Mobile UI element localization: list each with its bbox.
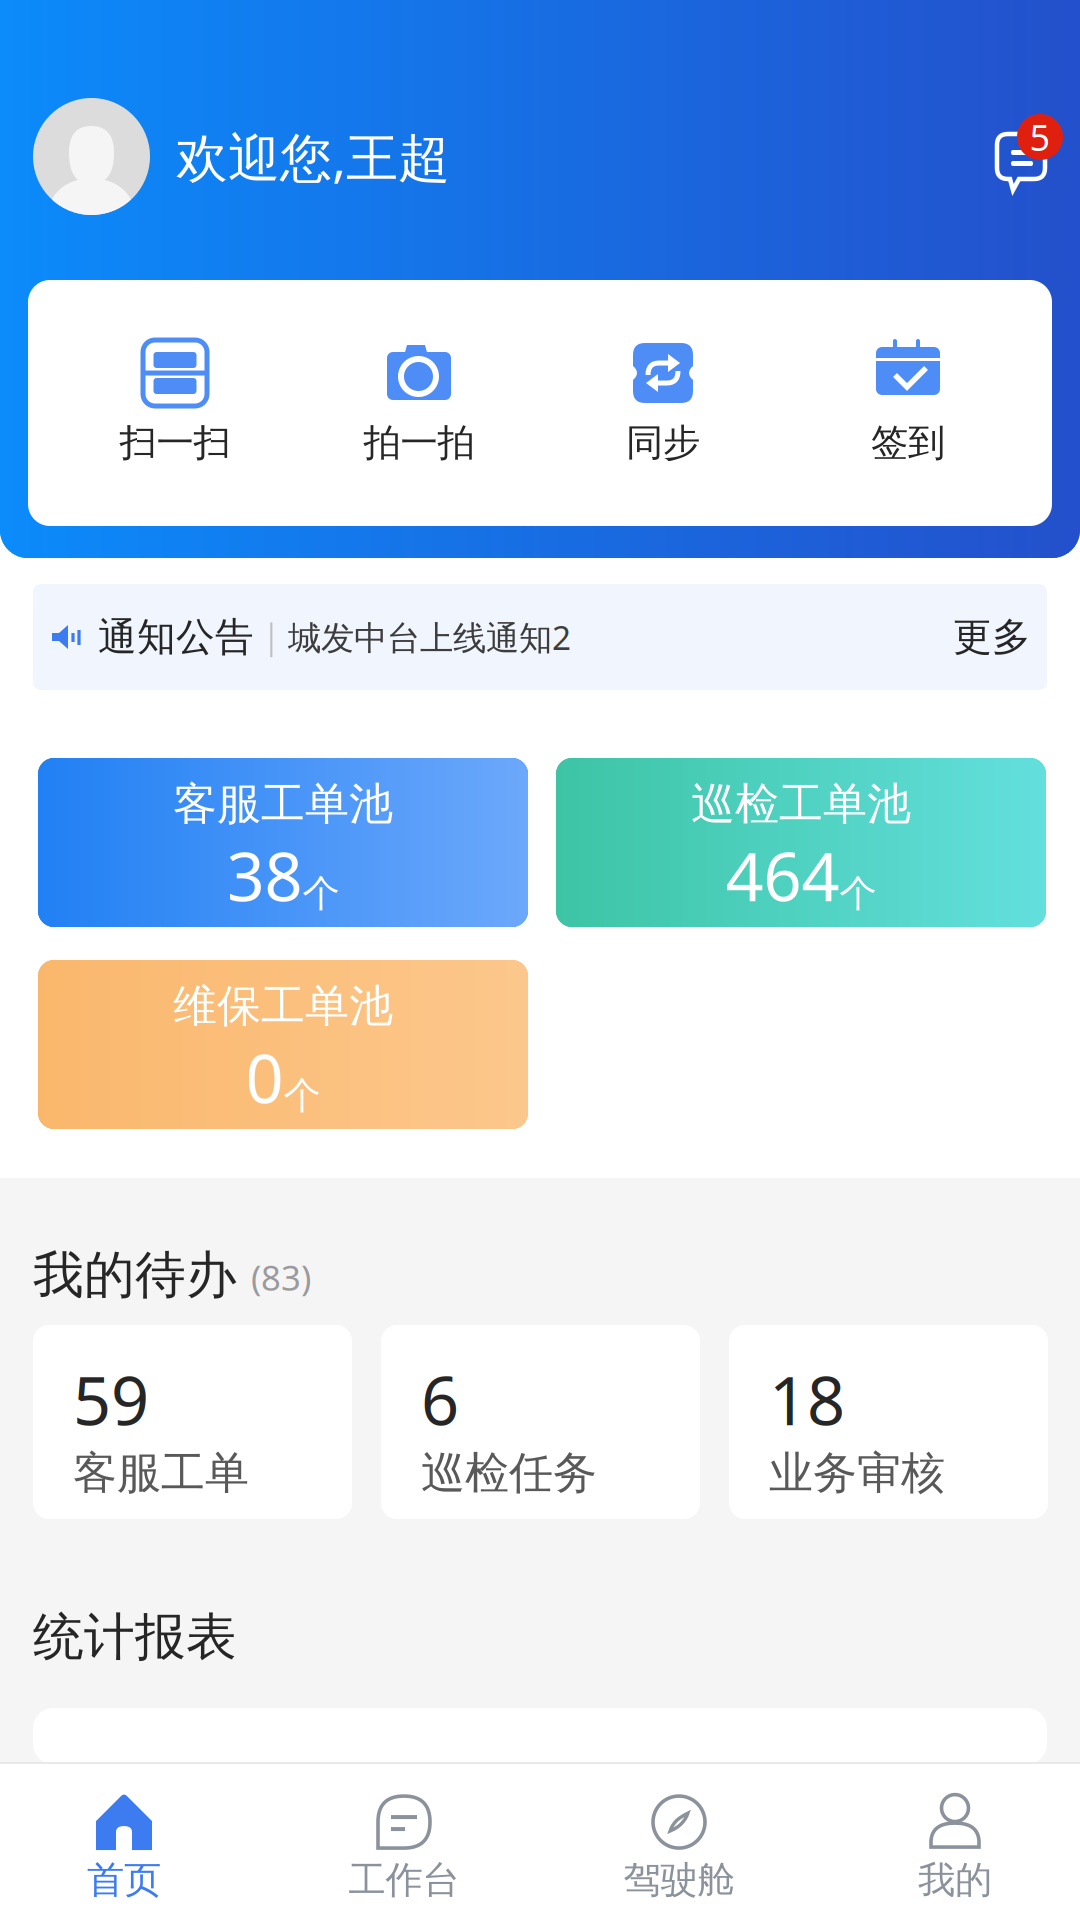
staticText: 同步: [626, 420, 700, 466]
button[interactable]: 巡检工单池: [556, 758, 1046, 927]
button[interactable]: 59: [33, 1325, 352, 1519]
button[interactable]: 6: [381, 1325, 700, 1519]
staticText: 个: [839, 871, 876, 917]
button[interactable]: 工作台: [284, 1770, 524, 1920]
staticText: 通知公告: [98, 613, 254, 661]
button[interactable]: 扫一扫: [53, 280, 297, 526]
button[interactable]: 欢迎您,王超: [33, 98, 450, 215]
button[interactable]: 驾驶舱: [559, 1770, 799, 1920]
staticText: 维保工单池: [173, 979, 393, 1033]
button[interactable]: 拍一拍: [297, 280, 541, 526]
staticText: 464: [725, 831, 839, 919]
staticText: 工作台: [348, 1857, 459, 1903]
button[interactable]: 客服工单池: [38, 758, 528, 927]
staticText: (83): [251, 1254, 311, 1300]
staticText: 首页: [87, 1857, 161, 1903]
staticText: 更多: [953, 613, 1031, 661]
button[interactable]: 签到: [786, 280, 1030, 526]
staticText: 38: [226, 831, 302, 919]
staticText: 5: [1029, 113, 1050, 161]
button[interactable]: 消息: [994, 114, 1074, 194]
staticText: 个: [302, 871, 339, 917]
staticText: 6: [421, 1355, 459, 1443]
button[interactable]: 通知公告: [33, 584, 1047, 690]
staticText: 个: [283, 1073, 320, 1119]
staticText: 巡检工单池: [691, 777, 911, 831]
staticText: 拍一拍: [363, 420, 474, 466]
staticText: 0: [245, 1033, 283, 1121]
staticText: 客服工单池: [173, 777, 393, 831]
button[interactable]: 18: [729, 1325, 1048, 1519]
staticText: 客服工单: [73, 1446, 249, 1500]
staticText: 驾驶舱: [623, 1857, 734, 1903]
button[interactable]: 同步: [541, 280, 785, 526]
staticText: 扫一扫: [119, 420, 230, 466]
staticText: 统计报表: [33, 1606, 237, 1668]
staticText: 18: [769, 1355, 845, 1443]
staticText: 我的: [918, 1857, 992, 1903]
staticText: 业务审核: [769, 1446, 945, 1500]
staticText: 欢迎您,王超: [176, 122, 450, 191]
staticText: 签到: [871, 420, 945, 466]
staticText: 我的待办: [33, 1244, 237, 1306]
button[interactable]: 我的: [835, 1770, 1075, 1920]
staticText: 巡检任务: [421, 1446, 597, 1500]
staticText: 59: [73, 1355, 149, 1443]
staticText: ｜: [254, 616, 288, 658]
staticText: 城发中台上线通知2: [288, 615, 571, 659]
button[interactable]: 维保工单池: [38, 960, 528, 1129]
button[interactable]: 首页: [4, 1770, 244, 1920]
